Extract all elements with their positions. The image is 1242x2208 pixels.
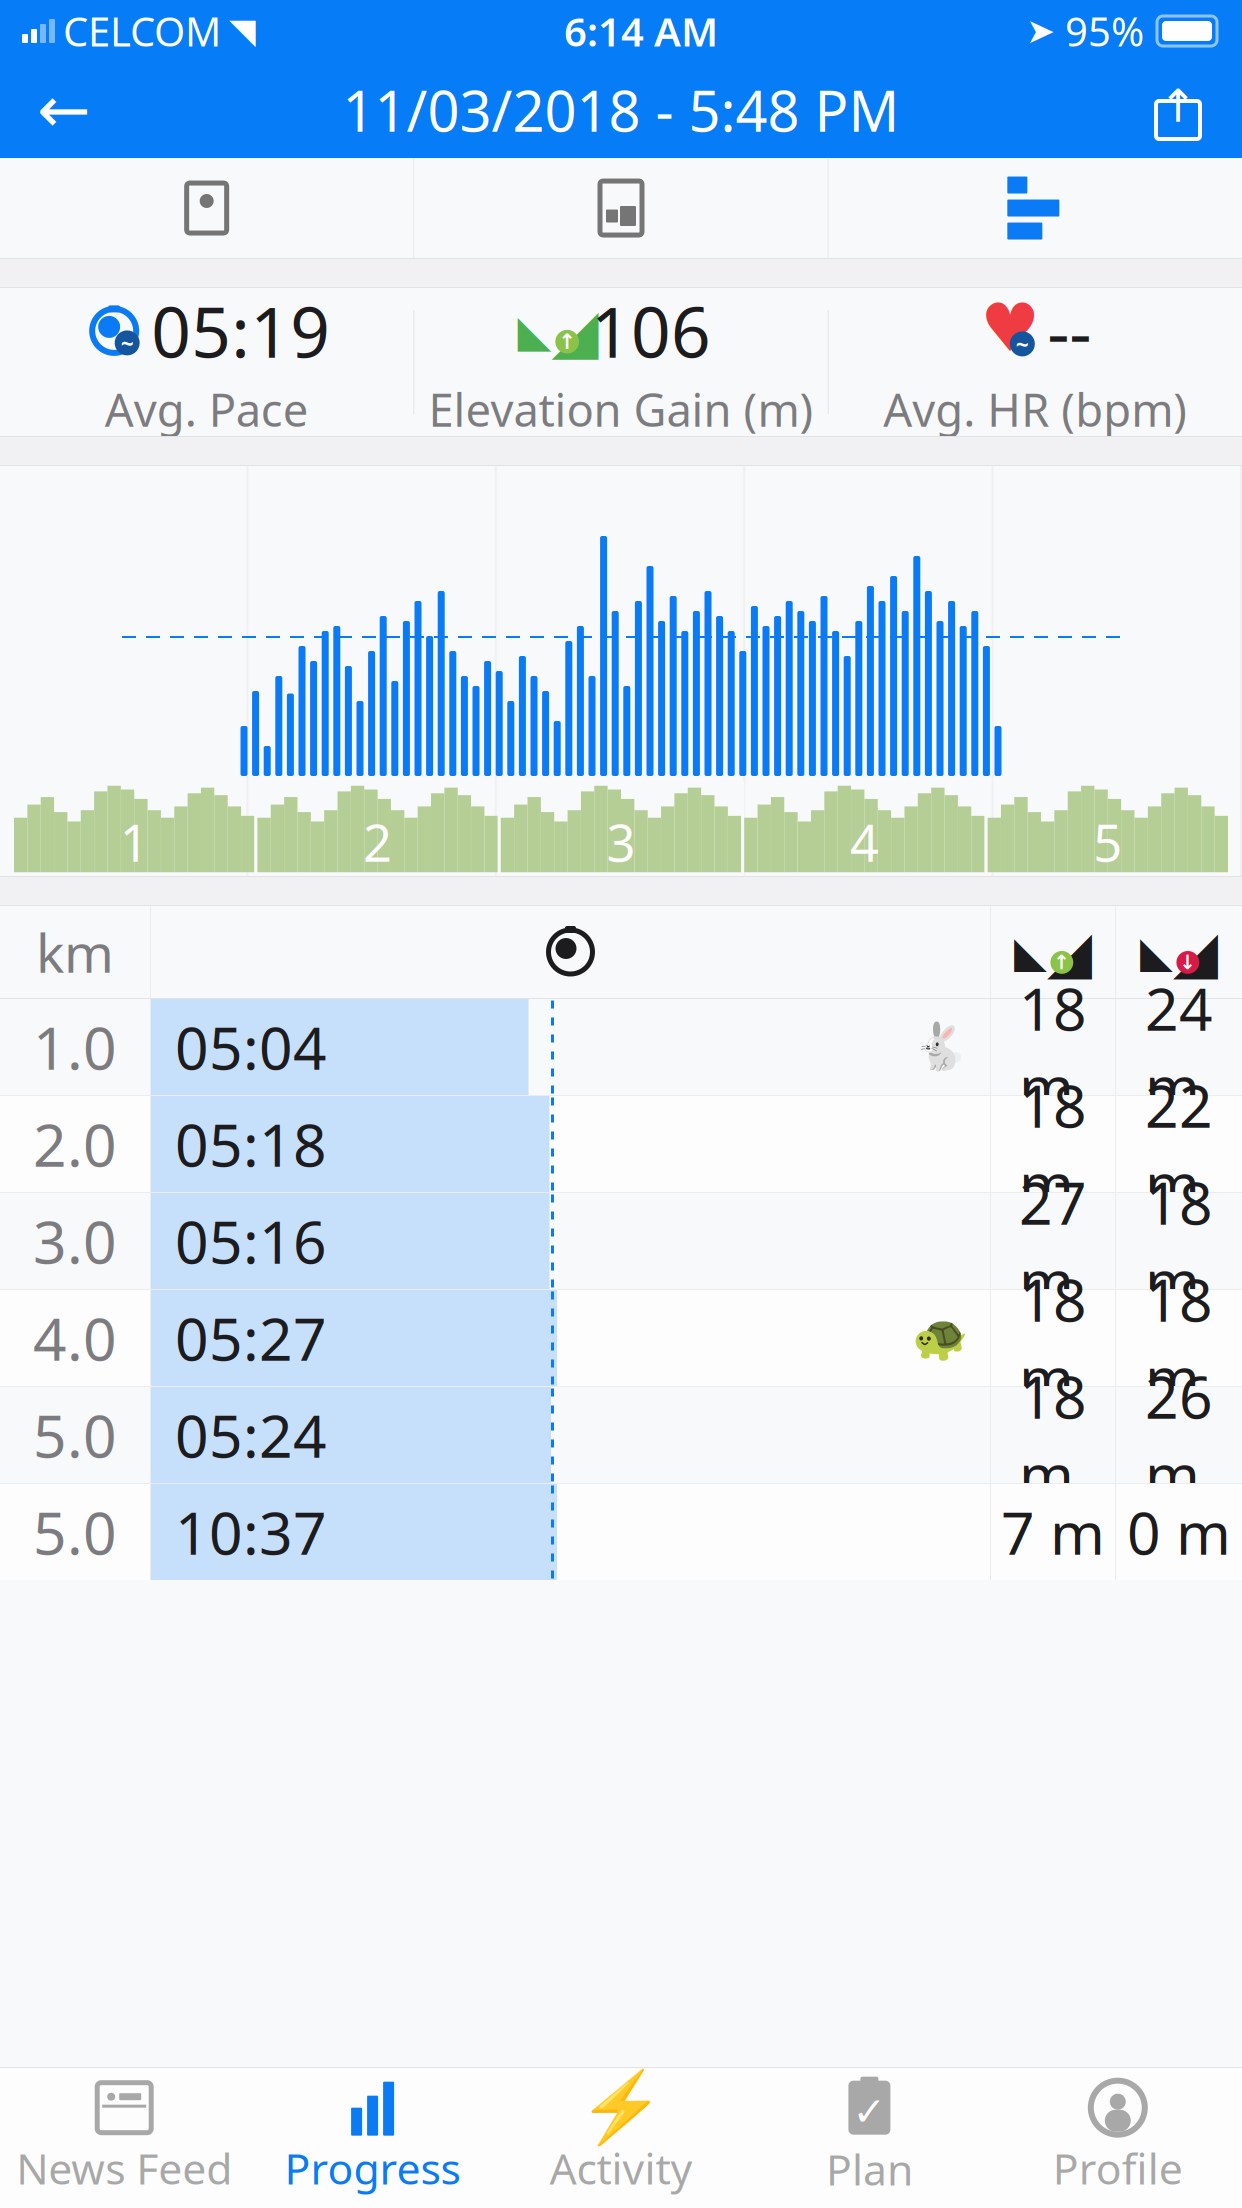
staticText: ↑: [1053, 951, 1070, 974]
staticText: ➤: [1026, 11, 1055, 51]
staticText: ◣: [1014, 928, 1047, 976]
staticText: 106: [591, 285, 711, 377]
staticText: 18 m: [1019, 969, 1087, 1125]
staticText: 🐇: [912, 1021, 968, 1073]
staticText: 05:18: [175, 1105, 327, 1183]
staticText: 4: [850, 808, 879, 876]
staticText: 7 m: [1001, 1493, 1105, 1571]
button[interactable]: Photos: [414, 158, 828, 258]
staticText: Activity: [549, 2140, 692, 2196]
staticText: 18 m: [1019, 1260, 1087, 1416]
staticText: 18 m: [1145, 1260, 1213, 1416]
button[interactable]: Map: [0, 158, 413, 258]
staticText: CELCOM: [63, 4, 221, 57]
staticText: Progress: [285, 2140, 461, 2196]
staticText: ↑: [1159, 80, 1197, 132]
button[interactable]: 1.0: [0, 999, 1242, 1095]
staticText: Avg. HR (bpm): [883, 379, 1187, 439]
staticText: 2: [363, 808, 392, 876]
staticText: 10:37: [175, 1493, 327, 1571]
staticText: 26 m: [1145, 1357, 1213, 1513]
button[interactable]: Statistics: [829, 158, 1242, 258]
button[interactable]: 5.0: [0, 1484, 1242, 1580]
button[interactable]: 2.0: [0, 1096, 1242, 1192]
staticText: ~: [1016, 329, 1029, 359]
staticText: 3.0: [33, 1202, 117, 1280]
staticText: Profile: [1053, 2140, 1183, 2196]
staticText: 11/03/2018 - 5:48 PM: [342, 73, 899, 147]
staticText: 3: [606, 808, 635, 876]
staticText: News Feed: [16, 2140, 232, 2196]
staticText: 95%: [1065, 4, 1144, 57]
staticText: ↑: [558, 330, 576, 354]
staticText: 05:16: [175, 1202, 327, 1280]
button[interactable]: ✓: [745, 2068, 994, 2208]
staticText: 5.0: [33, 1396, 117, 1474]
button[interactable]: 3.0: [0, 1193, 1242, 1289]
button[interactable]: Profile: [994, 2068, 1242, 2208]
staticText: ◢: [1047, 919, 1092, 985]
staticText: 05:04: [175, 1008, 327, 1086]
staticText: ~: [121, 328, 134, 358]
staticText: Elevation Gain (m): [428, 379, 813, 439]
staticText: ⚡: [578, 2068, 664, 2147]
staticText: --: [1047, 285, 1091, 377]
staticText: 0 m: [1127, 1493, 1231, 1571]
button[interactable]: 5.0: [0, 1387, 1242, 1483]
staticText: ◣: [1140, 928, 1173, 976]
staticText: ◢: [1173, 919, 1218, 985]
staticText: 27 m: [1019, 1163, 1087, 1319]
staticText: ↓: [1179, 951, 1196, 974]
staticText: Avg. Pace: [105, 379, 309, 439]
button[interactable]: Progress: [248, 2068, 497, 2208]
staticText: 🐢: [912, 1312, 968, 1364]
staticText: Plan: [826, 2141, 913, 2197]
staticText: 24 m: [1145, 969, 1213, 1125]
staticText: 1.0: [33, 1008, 117, 1086]
staticText: ♥: [980, 290, 1040, 366]
staticText: ◢: [551, 296, 598, 366]
staticText: 22 m: [1145, 1066, 1213, 1222]
staticText: 1: [120, 808, 149, 876]
staticText: 18 m: [1145, 1163, 1213, 1319]
staticText: 5: [1093, 808, 1122, 876]
staticText: 4.0: [33, 1299, 117, 1377]
button[interactable]: Back: [16, 62, 112, 158]
button[interactable]: 4.0: [0, 1290, 1242, 1386]
staticText: 18 m: [1019, 1066, 1087, 1222]
button[interactable]: Share: [1130, 62, 1226, 158]
staticText: 18 m: [1019, 1357, 1087, 1513]
staticText: ◣: [517, 306, 551, 356]
staticText: ◥: [229, 11, 256, 51]
button[interactable]: News Feed: [0, 2068, 248, 2208]
staticText: 2.0: [33, 1105, 117, 1183]
staticText: 05:24: [175, 1396, 327, 1474]
staticText: km: [36, 917, 114, 987]
staticText: 05:19: [151, 285, 330, 377]
staticText: 5.0: [33, 1493, 117, 1571]
staticText: ←: [37, 74, 91, 146]
button[interactable]: ⚡: [497, 2068, 745, 2208]
staticText: 6:14 AM: [564, 4, 718, 57]
staticText: 05:27: [175, 1299, 327, 1377]
staticText: ✓: [852, 2089, 886, 2134]
